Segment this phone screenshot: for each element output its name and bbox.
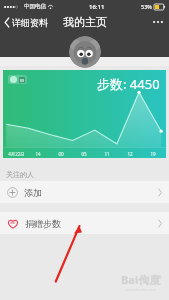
staticText: 我的主页 <box>63 15 107 29</box>
staticText: 捐赠步数 <box>25 218 61 229</box>
staticText: 05 <box>81 151 87 157</box>
staticText: 53% <box>141 3 152 10</box>
staticText: 16:11 <box>89 3 105 11</box>
staticText: 14 <box>35 151 41 157</box>
button[interactable]: Profile avatar <box>69 36 101 68</box>
button[interactable]: More options <box>147 13 169 31</box>
button[interactable]: 捐赠步数 <box>0 212 169 234</box>
staticText: www.baidu.com <box>126 287 157 292</box>
staticText: Bai佝度 <box>121 272 161 287</box>
staticText: 添加 <box>24 187 42 198</box>
button[interactable]: 日 <box>3 70 166 158</box>
staticText: 00 <box>58 151 64 157</box>
button[interactable]: 日 <box>8 75 27 84</box>
staticText: 4月22日 <box>8 151 25 157</box>
button[interactable]: 添加 <box>0 181 169 203</box>
staticText: 步数: 4450 <box>97 75 160 93</box>
staticText: 详细资料 <box>12 17 48 28</box>
staticText: 日 <box>20 78 24 83</box>
staticText: 关注的人 <box>6 170 34 179</box>
staticText: 11 <box>104 151 110 157</box>
staticText: 中国电信 <box>24 3 46 10</box>
button[interactable]: 详细资料 <box>4 13 52 31</box>
staticText: 12 <box>127 151 133 157</box>
staticText: 19 <box>150 151 156 157</box>
